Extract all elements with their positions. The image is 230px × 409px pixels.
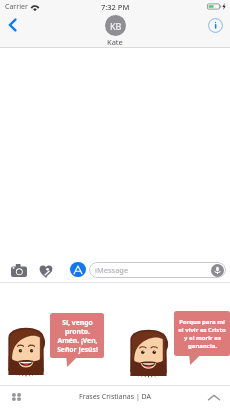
staticText: Frases Cristianas | DA bbox=[79, 392, 152, 402]
button[interactable]: Sticker: Si vengo pronto bbox=[0, 283, 115, 387]
button[interactable]: KB bbox=[95, 15, 135, 47]
button[interactable]: Details bbox=[206, 16, 224, 34]
staticText: Carrier bbox=[5, 2, 28, 12]
button[interactable]: Back bbox=[1, 14, 23, 36]
staticText: Señor Jesús! bbox=[57, 345, 98, 354]
button[interactable]: Apps bbox=[66, 258, 89, 281]
button[interactable]: Dictate bbox=[210, 263, 224, 277]
button[interactable]: Sticker: Porque para mi el vivir es Cris… bbox=[115, 283, 230, 387]
staticText: Amén. ¡Ven, bbox=[57, 336, 98, 345]
button[interactable]: Expand bbox=[205, 388, 223, 406]
staticText: 7:32 PM bbox=[101, 2, 130, 12]
staticText: Sí, vengo bbox=[62, 318, 93, 327]
staticText: pronto. bbox=[65, 327, 90, 336]
staticText: Kate bbox=[107, 37, 123, 47]
button[interactable]: App drawer bbox=[7, 388, 25, 406]
staticText: Porque para mí bbox=[179, 318, 225, 326]
staticText: KB bbox=[110, 20, 122, 32]
staticText: ganancia. bbox=[188, 342, 217, 350]
button[interactable]: Camera bbox=[7, 259, 30, 282]
button[interactable]: Digital Touch bbox=[34, 259, 57, 282]
staticText: y el morir es bbox=[184, 334, 221, 342]
staticText: el vivir es Cristo bbox=[178, 326, 226, 334]
button[interactable]: iMessage bbox=[89, 262, 226, 278]
staticText: iMessage bbox=[95, 265, 129, 275]
